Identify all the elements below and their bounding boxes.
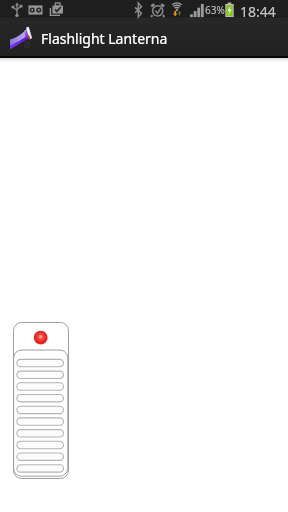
staticText: 18:44	[240, 2, 276, 21]
button[interactable]: Flashlight Lanterna	[0, 20, 288, 56]
staticText: 63%	[205, 3, 225, 17]
staticText: Flashlight Lanterna	[41, 29, 168, 48]
button[interactable]: Toggle flashlight	[13, 322, 69, 479]
